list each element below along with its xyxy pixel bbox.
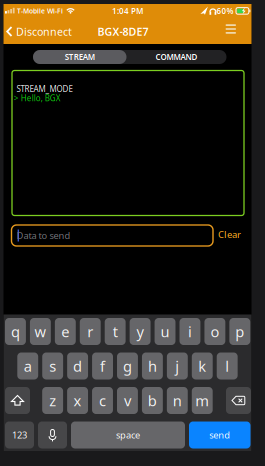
button[interactable]: z: [42, 387, 63, 414]
button[interactable]: Shift: [5, 387, 30, 414]
staticText: Clear: [218, 228, 241, 241]
button[interactable]: COMMAND: [126, 50, 226, 64]
button[interactable]: Clear: [218, 228, 241, 241]
staticText: l: [225, 356, 229, 376]
button[interactable]: 123: [5, 421, 34, 448]
staticText: z: [49, 391, 56, 410]
button[interactable]: Menu: [223, 22, 239, 36]
button[interactable]: j: [167, 352, 188, 379]
button[interactable]: p: [229, 318, 250, 345]
staticText: t: [113, 322, 118, 341]
staticText: T-Mobile Wi-Fi: [17, 6, 63, 15]
button[interactable]: b: [142, 387, 163, 414]
button[interactable]: l: [217, 352, 238, 379]
staticText: v: [124, 391, 131, 410]
button[interactable]: a: [17, 352, 38, 379]
staticText: y: [137, 322, 144, 341]
button[interactable]: w: [30, 318, 51, 345]
button[interactable]: r: [80, 318, 101, 345]
button[interactable]: STREAM: [33, 50, 126, 64]
button[interactable]: o: [204, 318, 225, 345]
staticText: n: [173, 391, 182, 410]
staticText: d: [73, 356, 82, 376]
staticText: q: [11, 322, 20, 341]
button[interactable]: u: [155, 318, 175, 345]
staticText: b: [148, 391, 157, 410]
staticText: a: [24, 356, 32, 376]
staticText: c: [99, 391, 106, 410]
button[interactable]: h: [142, 352, 163, 379]
staticText: > Hello, BGX: [14, 93, 61, 103]
button[interactable]: Disconnect: [6, 24, 72, 39]
staticText: STREAM_MODE: [16, 83, 72, 94]
staticText: j: [175, 356, 179, 376]
staticText: m: [195, 391, 209, 410]
button[interactable]: c: [92, 387, 113, 414]
button[interactable]: y: [130, 318, 151, 345]
staticText: i: [188, 322, 192, 341]
button[interactable]: k: [192, 352, 213, 379]
button[interactable]: v: [117, 387, 138, 414]
button[interactable]: Delete: [226, 387, 251, 414]
button[interactable]: n: [167, 387, 188, 414]
staticText: f: [100, 356, 105, 376]
button[interactable]: space: [71, 421, 185, 448]
button[interactable]: x: [67, 387, 88, 414]
staticText: Data to send: [16, 229, 70, 242]
staticText: k: [198, 356, 206, 376]
button[interactable]: Data to send: [11, 225, 213, 246]
staticText: s: [49, 356, 56, 376]
staticText: 60%: [216, 6, 233, 16]
button[interactable]: e: [55, 318, 76, 345]
staticText: 123: [12, 429, 27, 441]
button[interactable]: t: [105, 318, 126, 345]
staticText: send: [209, 429, 230, 441]
staticText: 1:04 PM: [112, 6, 143, 16]
button[interactable]: g: [117, 352, 138, 379]
staticText: r: [87, 322, 93, 341]
staticText: STREAM: [65, 52, 95, 62]
staticText: space: [116, 429, 140, 441]
button[interactable]: d: [67, 352, 88, 379]
staticText: g: [123, 356, 132, 376]
button[interactable]: send: [189, 421, 250, 448]
button[interactable]: f: [92, 352, 113, 379]
staticText: h: [148, 356, 157, 376]
staticText: BGX-8DE7: [97, 24, 148, 39]
staticText: u: [160, 322, 169, 341]
button[interactable]: Dictate: [38, 421, 67, 448]
staticText: o: [210, 322, 219, 341]
button[interactable]: s: [42, 352, 63, 379]
staticText: Disconnect: [16, 24, 72, 39]
staticText: COMMAND: [155, 52, 197, 62]
staticText: e: [61, 322, 69, 341]
staticText: p: [235, 322, 244, 341]
button[interactable]: q: [5, 318, 26, 345]
button[interactable]: i: [179, 318, 200, 345]
staticText: w: [34, 322, 46, 341]
staticText: x: [74, 391, 82, 410]
button[interactable]: m: [192, 387, 213, 414]
